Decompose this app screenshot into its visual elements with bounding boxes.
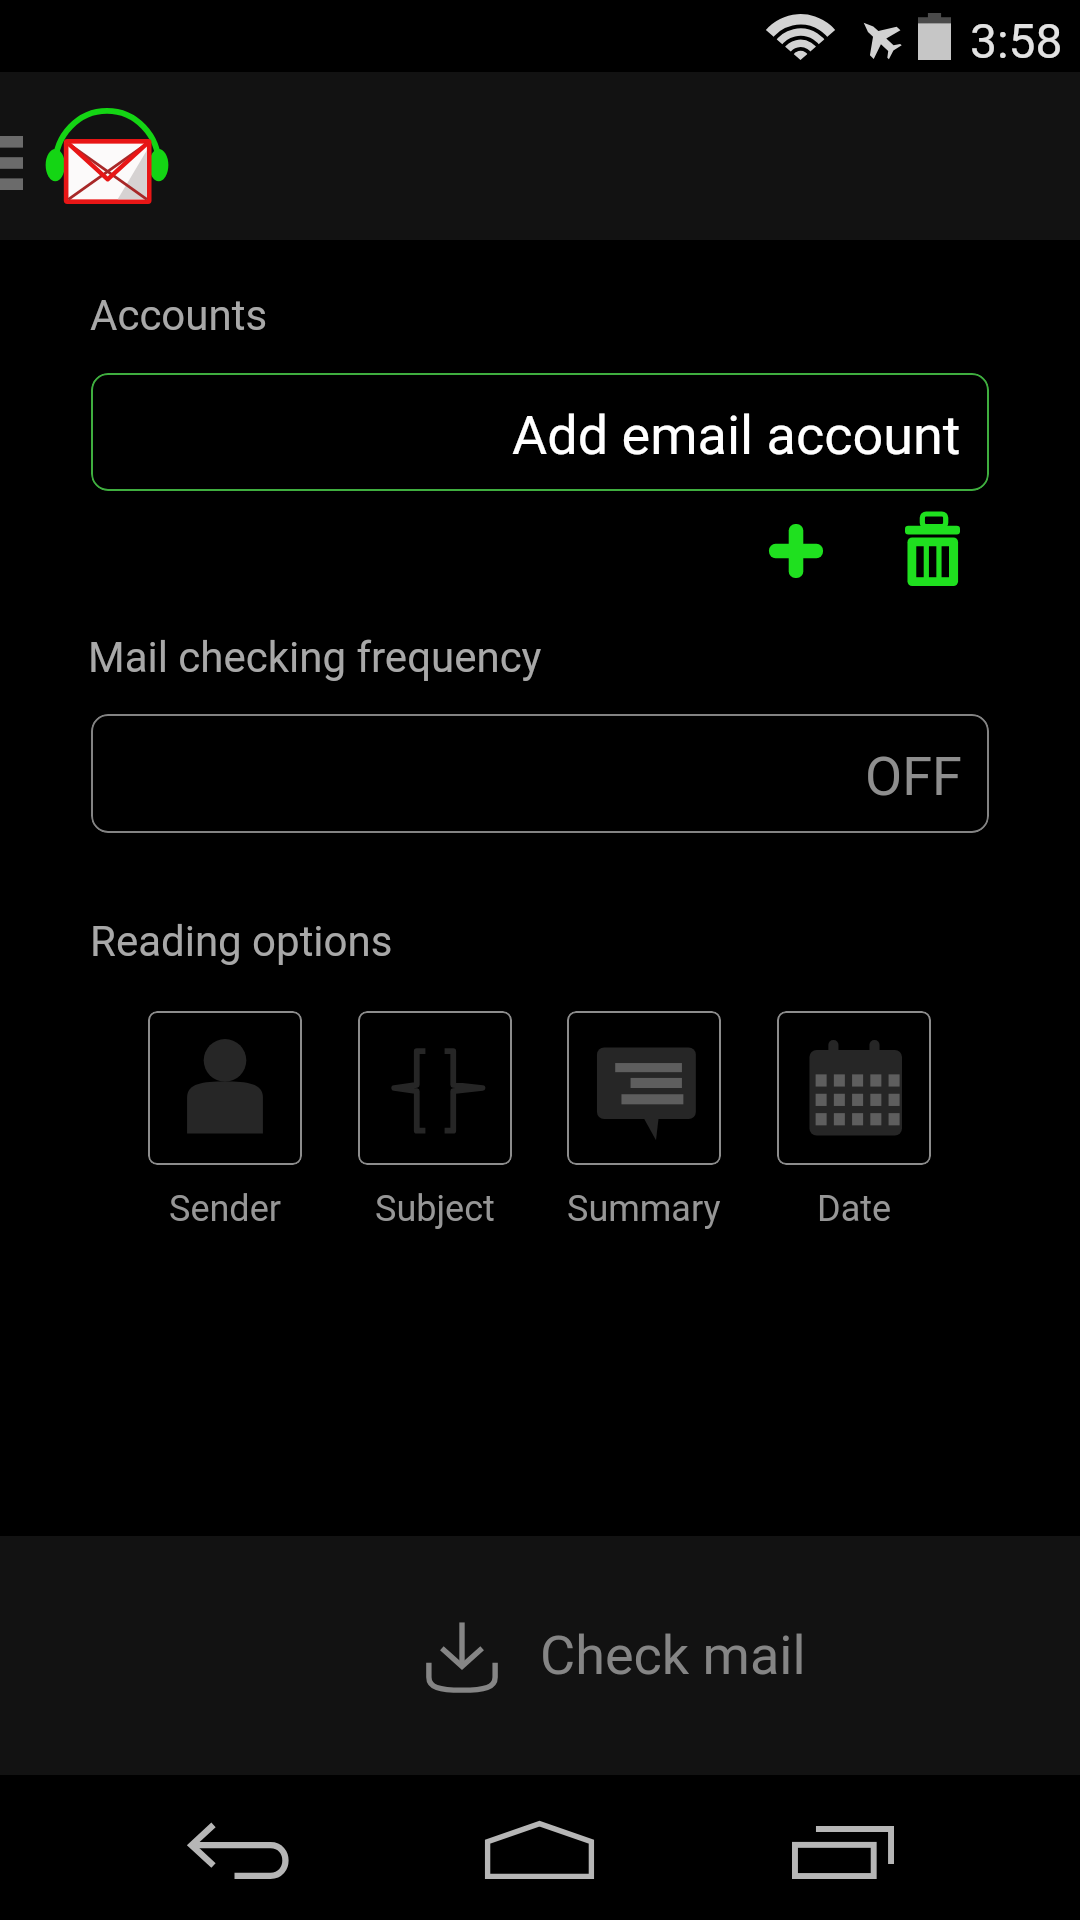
button[interactable]: OFF [91,714,989,833]
button[interactable]: Date [777,1011,931,1165]
button[interactable]: Subject [358,1011,512,1165]
other: Open navigation menu [0,136,23,190]
staticText: Subject [375,1188,495,1230]
button[interactable]: Check mail [0,1536,1080,1775]
staticText: Reading options [90,917,393,966]
staticText: Check mail [540,1624,806,1687]
staticText: Summary [567,1188,721,1230]
button[interactable]: Mail app icon [30,72,180,240]
staticText: Sender [169,1188,281,1230]
staticText: OFF [865,745,962,808]
staticText: Accounts [90,291,268,340]
button[interactable]: Delete account [887,505,977,595]
button[interactable]: Back [139,1775,339,1920]
button[interactable]: Sender [148,1011,302,1165]
button[interactable]: Add account [750,505,842,597]
button[interactable]: Summary [567,1011,721,1165]
button[interactable]: Home [440,1775,640,1920]
staticText: Date [817,1188,892,1230]
button[interactable]: Recent apps [743,1775,943,1920]
staticText: 3:58 [970,13,1063,69]
button[interactable]: Add email account [91,373,989,491]
staticText: Mail checking frequency [88,633,542,682]
staticText: Add email account [512,404,961,467]
